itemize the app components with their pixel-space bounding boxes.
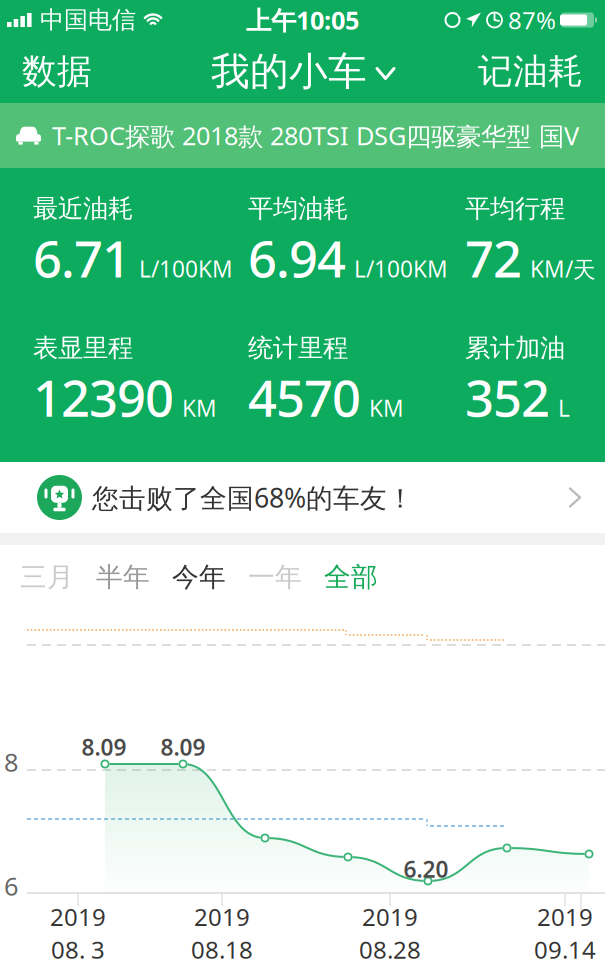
button[interactable]: 三月 — [9, 545, 85, 609]
staticText: 累计加油 — [465, 332, 565, 363]
staticText: 2019 — [537, 901, 593, 932]
staticText: 一年 — [248, 561, 302, 593]
staticText: 2019 — [362, 901, 418, 932]
staticText: 352 — [465, 363, 550, 431]
staticText: L/100KM — [354, 254, 448, 284]
staticText: 8.09 — [160, 732, 205, 762]
staticText: 今年 — [172, 561, 226, 593]
button[interactable]: T-ROC探歌 2018款 280TSI DSG四驱豪华型 国V — [0, 103, 605, 168]
staticText: 中国电信 — [40, 5, 136, 35]
staticText: 全部 — [324, 561, 378, 593]
staticText: 三月 — [20, 561, 74, 593]
button[interactable]: 今年 — [161, 545, 237, 609]
staticText: 数据 — [22, 50, 92, 93]
staticText: 08. 3 — [51, 933, 105, 960]
button[interactable]: 一年 — [237, 545, 313, 609]
button[interactable]: 全部 — [313, 545, 389, 609]
staticText: KM — [182, 393, 217, 423]
staticText: KM/天 — [530, 254, 596, 284]
staticText: 2019 — [194, 901, 250, 932]
staticText: 08.28 — [359, 933, 421, 960]
staticText: 半年 — [96, 561, 150, 593]
staticText: L/100KM — [139, 254, 233, 284]
staticText: 4570 — [248, 363, 361, 431]
staticText: 87% — [508, 4, 556, 36]
staticText: 记油耗 — [478, 50, 583, 93]
staticText: 表显里程 — [33, 332, 133, 363]
staticText: 08.18 — [191, 933, 253, 960]
staticText: 平均行程 — [465, 193, 565, 224]
staticText: 6.94 — [248, 224, 346, 291]
staticText: 2019 — [50, 901, 106, 932]
button[interactable]: 数据 — [22, 50, 92, 93]
staticText: 您击败了全国68%的车友！ — [92, 480, 414, 515]
button[interactable]: 记油耗 — [478, 50, 583, 93]
staticText: 上午10:05 — [246, 3, 359, 37]
staticText: 72 — [465, 224, 522, 291]
staticText: 6.71 — [33, 224, 131, 291]
staticText: 8.09 — [81, 732, 126, 762]
staticText: 我的小车 — [211, 48, 367, 95]
staticText: T-ROC探歌 2018款 280TSI DSG四驱豪华型 国V — [52, 119, 579, 152]
staticText: 最近油耗 — [33, 193, 133, 224]
staticText: KM — [369, 393, 404, 423]
button[interactable]: 您击败了全国68%的车友！ — [0, 462, 605, 533]
staticText: 8 — [4, 745, 18, 779]
staticText: 6 — [4, 869, 18, 903]
button[interactable]: 半年 — [85, 545, 161, 609]
staticText: 6.20 — [403, 854, 448, 884]
button[interactable]: 我的小车 — [211, 48, 394, 95]
staticText: 09.14 — [534, 933, 596, 960]
staticText: 12390 — [33, 363, 174, 431]
staticText: 平均油耗 — [248, 193, 348, 224]
staticText: 统计里程 — [248, 332, 348, 363]
staticText: L — [558, 393, 570, 423]
